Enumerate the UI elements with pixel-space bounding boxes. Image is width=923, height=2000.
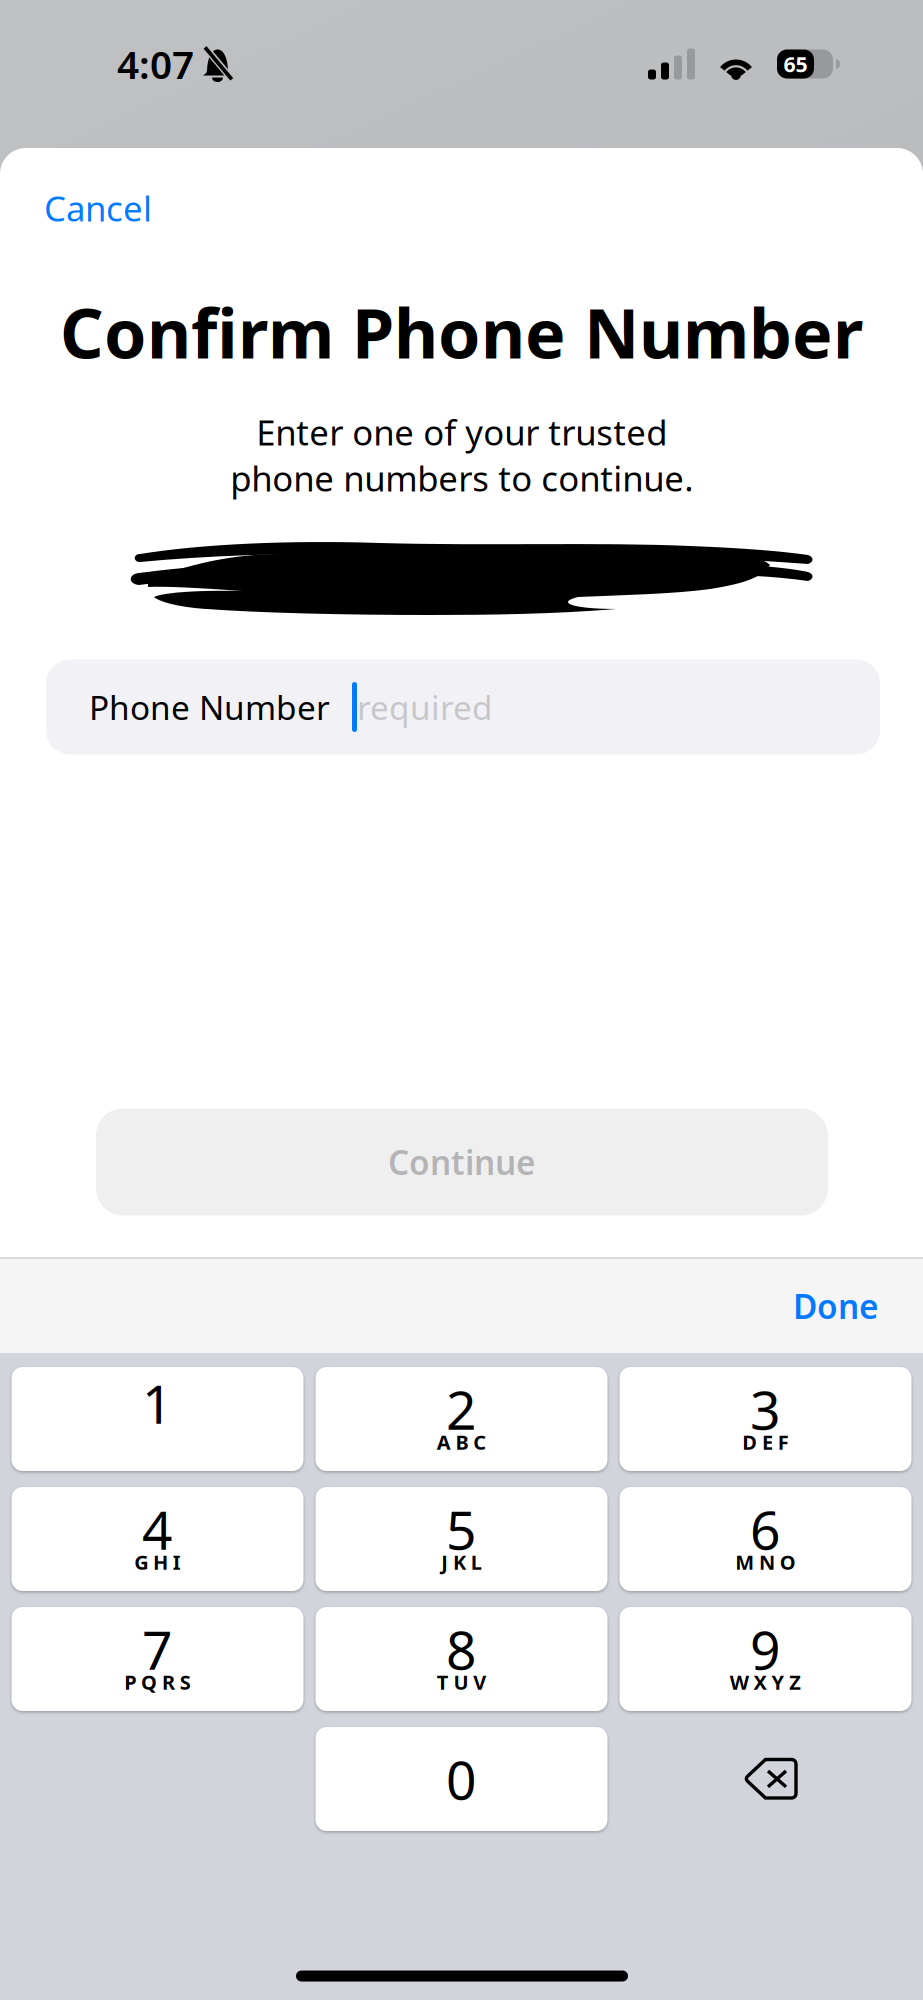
button[interactable]: Cancel: [44, 171, 204, 245]
button[interactable]: 5: [315, 1487, 607, 1591]
button[interactable]: 9: [619, 1607, 911, 1711]
staticText: TUV: [437, 1669, 486, 1695]
staticText: Enter one of your trusted phone numbers …: [230, 409, 693, 501]
button[interactable]: 6: [619, 1487, 911, 1591]
staticText: DEF: [742, 1429, 789, 1455]
staticText: 8: [446, 1614, 477, 1684]
staticText: GHI: [134, 1549, 181, 1575]
staticText: Phone Number: [89, 685, 330, 729]
staticText: Continue: [388, 1140, 536, 1184]
staticText: PQRS: [124, 1669, 191, 1695]
staticText: 1: [142, 1368, 173, 1438]
staticText: JKL: [441, 1549, 482, 1575]
staticText: MNO: [735, 1549, 796, 1575]
button[interactable]: 2: [315, 1367, 607, 1471]
staticText: 0: [446, 1744, 477, 1814]
button[interactable]: Continue: [96, 1108, 828, 1215]
button[interactable]: Delete: [619, 1727, 911, 1831]
staticText: 2: [446, 1374, 477, 1444]
button[interactable]: 7: [11, 1607, 303, 1711]
button[interactable]: 4: [11, 1487, 303, 1591]
button[interactable]: Done: [719, 1265, 879, 1347]
staticText: 4: [142, 1494, 173, 1564]
staticText: 65: [783, 50, 807, 78]
staticText: required: [357, 685, 493, 729]
button[interactable]: 0: [315, 1727, 607, 1831]
staticText: 4:07: [117, 38, 194, 90]
button[interactable]: 1: [11, 1367, 303, 1471]
button[interactable]: 3: [619, 1367, 911, 1471]
staticText: 7: [142, 1614, 173, 1684]
staticText: 3: [750, 1374, 781, 1444]
staticText: 5: [446, 1494, 477, 1564]
staticText: 6: [750, 1494, 781, 1564]
staticText: WXYZ: [730, 1669, 801, 1695]
staticText: Cancel: [44, 185, 152, 231]
button[interactable]: 8: [315, 1607, 607, 1711]
staticText: Done: [793, 1284, 879, 1328]
staticText: ABC: [437, 1429, 486, 1455]
staticText: Confirm Phone Number: [60, 287, 863, 377]
staticText: 9: [750, 1614, 781, 1684]
